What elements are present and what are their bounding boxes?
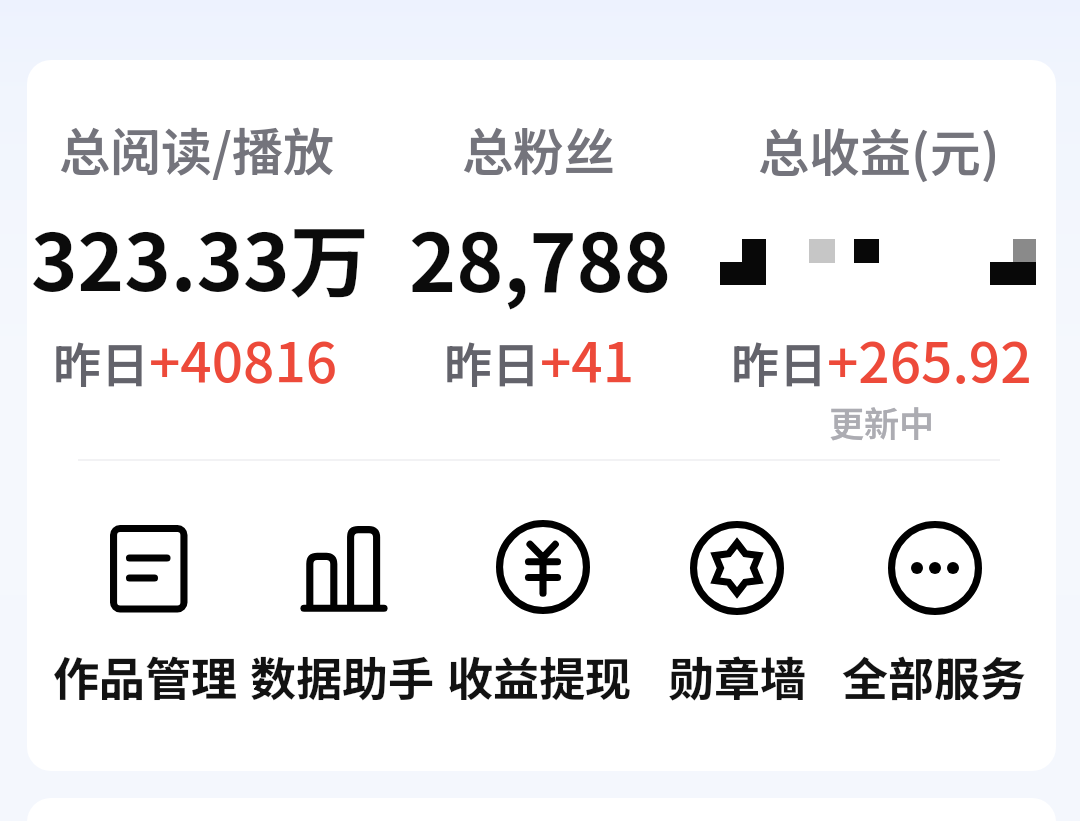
staticText: 总粉丝 <box>462 112 616 186</box>
staticText: 昨日+40816 <box>53 319 338 399</box>
staticText: 全部服务 <box>836 643 1032 710</box>
staticText: 昨日+265.92 <box>731 319 1032 399</box>
staticText: 总阅读/播放 <box>59 112 334 186</box>
staticText: 数据助手 <box>244 643 440 710</box>
button[interactable]: 全部服务 <box>836 505 1032 710</box>
staticText: 更新中 <box>829 396 935 447</box>
button[interactable]: 作品管理 <box>47 505 243 710</box>
staticText: 28,788 <box>409 199 671 315</box>
staticText: 昨日+41 <box>444 319 635 399</box>
staticText: 勋章墙 <box>639 643 835 710</box>
staticText: 323.33万 <box>31 199 369 313</box>
staticText: 总收益(元) <box>758 113 1000 187</box>
button[interactable]: 勋章墙 <box>639 505 835 710</box>
staticText: 作品管理 <box>47 643 243 710</box>
staticText: 收益提现 <box>441 643 637 710</box>
button[interactable]: 收益提现 <box>441 505 637 710</box>
button[interactable]: 数据助手 <box>244 505 440 710</box>
